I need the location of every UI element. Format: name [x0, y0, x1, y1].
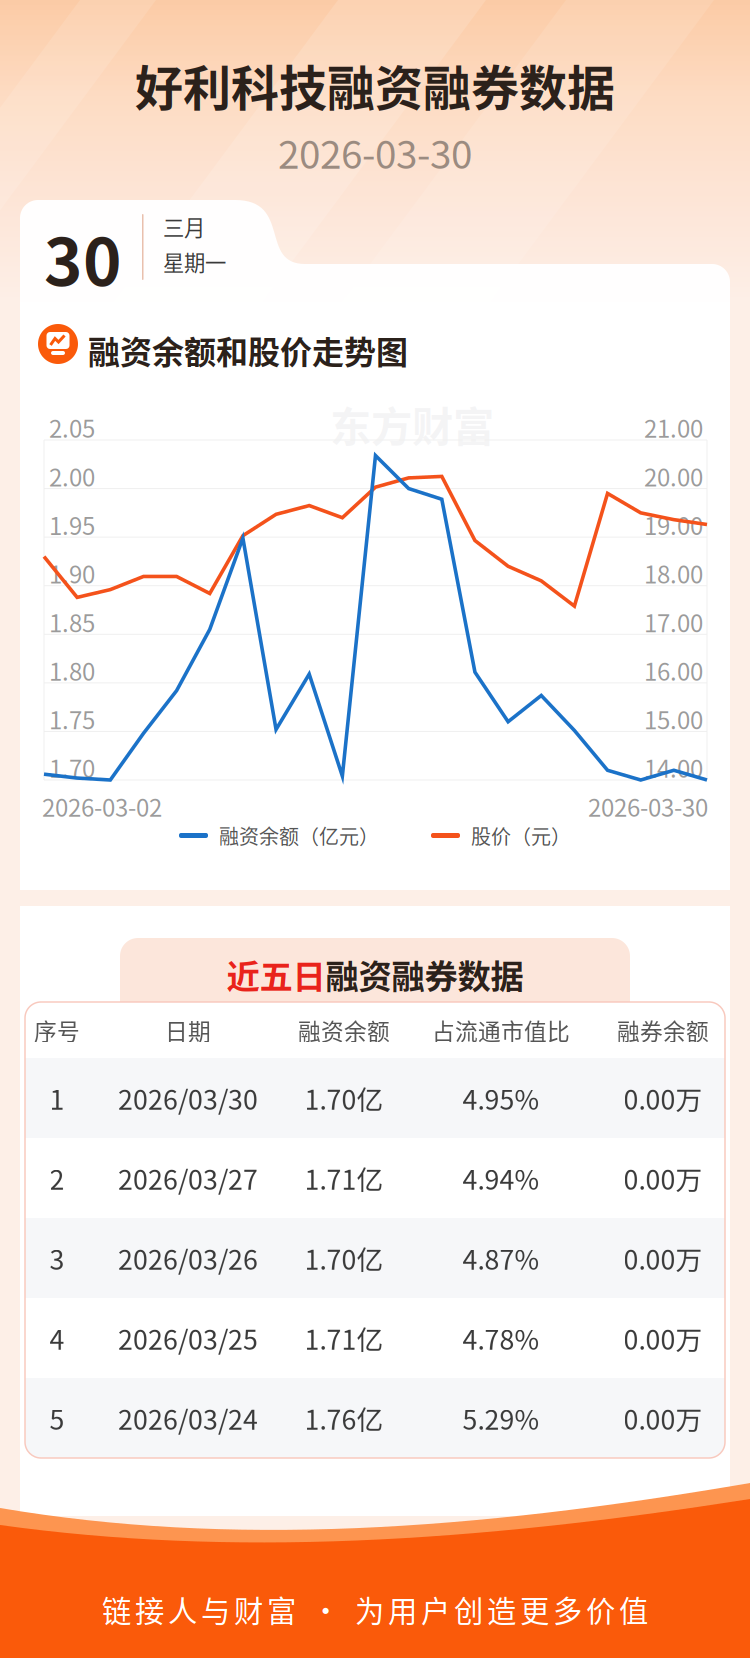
staticText: 4.94% [462, 1159, 539, 1197]
staticText: 5.29% [462, 1399, 539, 1437]
staticText: 2026-03-30 [278, 124, 472, 180]
staticText: 1.76亿 [304, 1399, 383, 1437]
staticText: 2026-03-30 [588, 789, 708, 824]
staticText: 2.05 [49, 410, 95, 445]
staticText: 1.75 [49, 701, 95, 736]
staticText: 链接人与财富 · 为用户创造更多价值 [102, 1588, 648, 1630]
staticText: 东方财富 [330, 394, 494, 454]
staticText: 2026/03/24 [118, 1399, 258, 1437]
staticText: 19.00 [644, 507, 703, 542]
staticText: 融资余额（亿元） [219, 821, 379, 850]
staticText: 14.00 [644, 750, 703, 785]
staticText: 4 [49, 1319, 64, 1357]
staticText: 21.00 [644, 410, 703, 445]
staticText: 2026/03/30 [118, 1079, 258, 1117]
staticText: 1.71亿 [304, 1319, 383, 1357]
staticText: 融资融券数据 [325, 950, 523, 998]
staticText: 2.00 [49, 459, 95, 493]
staticText: 好利科技融资融券数据 [135, 50, 615, 119]
staticText: 股价（元） [471, 821, 571, 850]
staticText: 17.00 [644, 604, 703, 639]
staticText: 1 [49, 1079, 64, 1117]
staticText: 融资余额 [298, 1014, 390, 1046]
staticText: 4.87% [462, 1239, 539, 1277]
staticText: 融券余额 [617, 1014, 709, 1046]
staticText: 1.95 [49, 507, 95, 542]
staticText: 0.00万 [623, 1319, 702, 1357]
staticText: 2 [49, 1159, 64, 1197]
staticText: 1.70 [49, 750, 95, 785]
staticText: 1.70亿 [304, 1079, 383, 1117]
staticText: 1.70亿 [304, 1239, 383, 1277]
staticText: 0.00万 [623, 1159, 702, 1197]
staticText: 1.90 [49, 556, 95, 590]
staticText: 3 [49, 1239, 64, 1277]
staticText: 融资余额和股价走势图 [88, 327, 408, 373]
staticText: 30 [44, 210, 122, 305]
staticText: 三月 [163, 211, 205, 242]
staticText: 日期 [165, 1014, 211, 1046]
staticText: 序号 [34, 1014, 80, 1046]
staticText: 16.00 [644, 653, 703, 688]
staticText: 20.00 [644, 459, 703, 493]
staticText: 0.00万 [623, 1079, 702, 1117]
staticText: 5 [49, 1399, 64, 1437]
staticText: 1.85 [49, 604, 95, 639]
staticText: 4.78% [462, 1319, 539, 1357]
staticText: 2026/03/26 [118, 1239, 258, 1277]
staticText: 4.95% [462, 1079, 539, 1117]
staticText: 2026/03/25 [118, 1319, 258, 1357]
staticText: 1.80 [49, 653, 95, 688]
staticText: 0.00万 [623, 1399, 702, 1437]
staticText: 15.00 [644, 701, 703, 736]
staticText: 星期一 [163, 246, 226, 277]
staticText: 近五日 [226, 950, 325, 998]
staticText: 2026/03/27 [118, 1159, 258, 1197]
staticText: 18.00 [644, 556, 703, 590]
staticText: 占流通市值比 [432, 1014, 570, 1046]
staticText: 1.71亿 [304, 1159, 383, 1197]
staticText: 2026-03-02 [42, 789, 162, 824]
staticText: 0.00万 [623, 1239, 702, 1277]
